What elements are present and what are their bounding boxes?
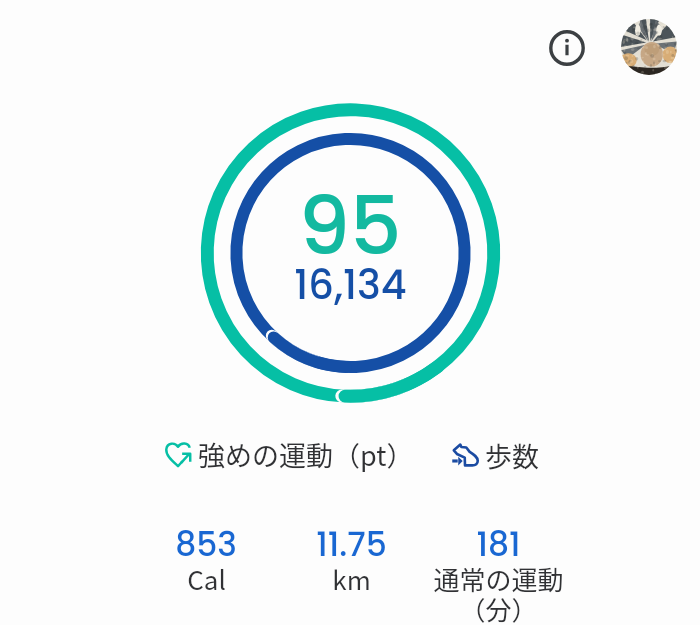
- staticText: 歩数: [485, 436, 539, 475]
- button[interactable]: Profile: [621, 19, 677, 75]
- staticText: 通常の運動 （分）: [433, 560, 564, 625]
- staticText: 強めの運動（pt）: [198, 435, 414, 474]
- button[interactable]: 歩数: [445, 435, 539, 475]
- staticText: Cal: [187, 560, 226, 598]
- staticText: 181: [476, 521, 521, 567]
- staticText: km: [332, 560, 371, 598]
- staticText: 853: [175, 521, 237, 567]
- button[interactable]: 853: [86, 521, 326, 605]
- staticText: 95: [298, 169, 402, 282]
- button[interactable]: 11.75: [231, 521, 471, 605]
- staticText: 11.75: [316, 521, 387, 567]
- staticText: 16,134: [294, 257, 407, 313]
- button[interactable]: 強めの運動（pt）: [158, 434, 414, 474]
- button[interactable]: 181: [378, 521, 618, 625]
- button[interactable]: Information: [543, 24, 591, 72]
